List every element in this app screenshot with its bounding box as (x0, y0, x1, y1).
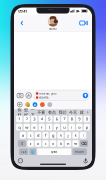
button[interactable]: o (76, 124, 82, 130)
staticText: a (22, 133, 24, 138)
button[interactable]: ⌫ (80, 140, 88, 147)
button[interactable]: k (72, 132, 79, 139)
staticText: 7 (63, 116, 65, 121)
button[interactable]: 6 (54, 116, 60, 122)
staticText: 5 (48, 116, 50, 121)
staticText: 8 (71, 116, 73, 121)
staticText: 有点 (48, 110, 56, 115)
staticText: 你好吗? (39, 96, 49, 99)
staticText: space (51, 150, 58, 153)
button[interactable]: 你好 (16, 107, 23, 117)
button[interactable]: g (50, 132, 56, 139)
button[interactable]: 有点 (47, 110, 57, 115)
button[interactable]: c (42, 140, 49, 147)
button[interactable]: 就 (78, 110, 85, 115)
staticText: f (45, 133, 46, 138)
staticText: h (59, 133, 61, 138)
staticText: r (41, 124, 43, 130)
button[interactable]: 3 (31, 116, 37, 122)
button[interactable]: 0 (84, 116, 90, 122)
button[interactable]: Nora (48, 15, 58, 30)
staticText: k (74, 133, 76, 138)
button[interactable]: More candidates (86, 109, 90, 115)
button[interactable]: Back (17, 17, 26, 28)
button[interactable]: 一下 (29, 107, 36, 117)
button[interactable]: ⇧ (18, 140, 26, 147)
button[interactable]: l (80, 132, 86, 139)
staticText: y (56, 124, 58, 130)
button[interactable]: 8 (69, 116, 75, 122)
button[interactable]: b (57, 140, 64, 147)
button[interactable]: 🌐 (29, 148, 36, 155)
button[interactable]: Emoji keyboard (17, 157, 24, 164)
button[interactable]: 您好 (23, 107, 29, 117)
staticText: t (49, 124, 50, 130)
button[interactable]: r (39, 124, 45, 130)
staticText: ⌫ (81, 141, 87, 146)
button[interactable]: App Store (25, 92, 32, 99)
button[interactable]: More apps (17, 102, 23, 107)
button[interactable]: v (50, 140, 56, 147)
button[interactable]: i (69, 124, 75, 130)
staticText: return (75, 150, 84, 153)
staticText: o (78, 124, 80, 130)
button[interactable]: s (27, 132, 34, 139)
button[interactable]: a (20, 132, 26, 139)
button[interactable]: f (42, 132, 49, 139)
button[interactable]: 我们 (57, 110, 68, 115)
button[interactable]: Camera (17, 92, 23, 99)
button[interactable]: space (37, 148, 71, 155)
staticText: 您好 (24, 107, 28, 117)
staticText: u (63, 124, 65, 130)
button[interactable]: p (84, 124, 90, 130)
button[interactable]: 5 (46, 116, 52, 122)
button[interactable]: w (24, 124, 30, 130)
staticText: e (33, 124, 35, 130)
staticText: v (52, 141, 54, 146)
staticText: 我们 (58, 110, 66, 115)
staticText: l (82, 133, 83, 138)
button[interactable]: x (35, 140, 41, 147)
button[interactable]: m (72, 140, 79, 147)
button[interactable]: q (16, 124, 22, 130)
button[interactable]: Dictation (82, 157, 89, 164)
staticText: ⇧ (20, 141, 23, 146)
button[interactable]: 7 (61, 116, 67, 122)
button[interactable]: FaceTime video (79, 17, 89, 28)
staticText: w (25, 124, 28, 130)
staticText: z (29, 141, 31, 146)
button[interactable]: 4 (39, 116, 45, 122)
staticText: 1 (18, 116, 20, 121)
button[interactable]: return (72, 148, 87, 155)
button[interactable]: z (27, 140, 34, 147)
button[interactable]: t (46, 124, 52, 130)
button[interactable]: 今天 (68, 110, 78, 115)
staticText: 9 (78, 116, 80, 121)
button[interactable]: n (65, 140, 71, 147)
button[interactable]: Send (82, 92, 88, 99)
button[interactable]: 1 (16, 116, 22, 122)
staticText: q (18, 124, 20, 130)
button[interactable]: 2 (24, 116, 30, 122)
staticText: x (37, 141, 39, 146)
staticText: Nora (49, 27, 55, 31)
button[interactable]: y (54, 124, 60, 130)
button[interactable]: 9 (76, 116, 82, 122)
button[interactable]: u (61, 124, 67, 130)
staticText: 0 (86, 116, 88, 121)
staticText: 你好 (17, 107, 21, 117)
staticText: 一下 (31, 107, 35, 117)
staticText: d (37, 133, 39, 138)
button[interactable]: 不要 (36, 110, 47, 115)
staticText: g (52, 133, 54, 138)
button[interactable]: e (31, 124, 37, 130)
staticText: i (71, 124, 72, 130)
button[interactable]: j (65, 132, 71, 139)
button[interactable]: h (57, 132, 64, 139)
button[interactable]: 123 (19, 148, 28, 155)
staticText: c (44, 141, 46, 146)
button[interactable]: d (35, 132, 41, 139)
staticText: s (29, 133, 31, 138)
staticText: 2 (26, 116, 28, 121)
staticText: 09:41 (18, 8, 27, 14)
